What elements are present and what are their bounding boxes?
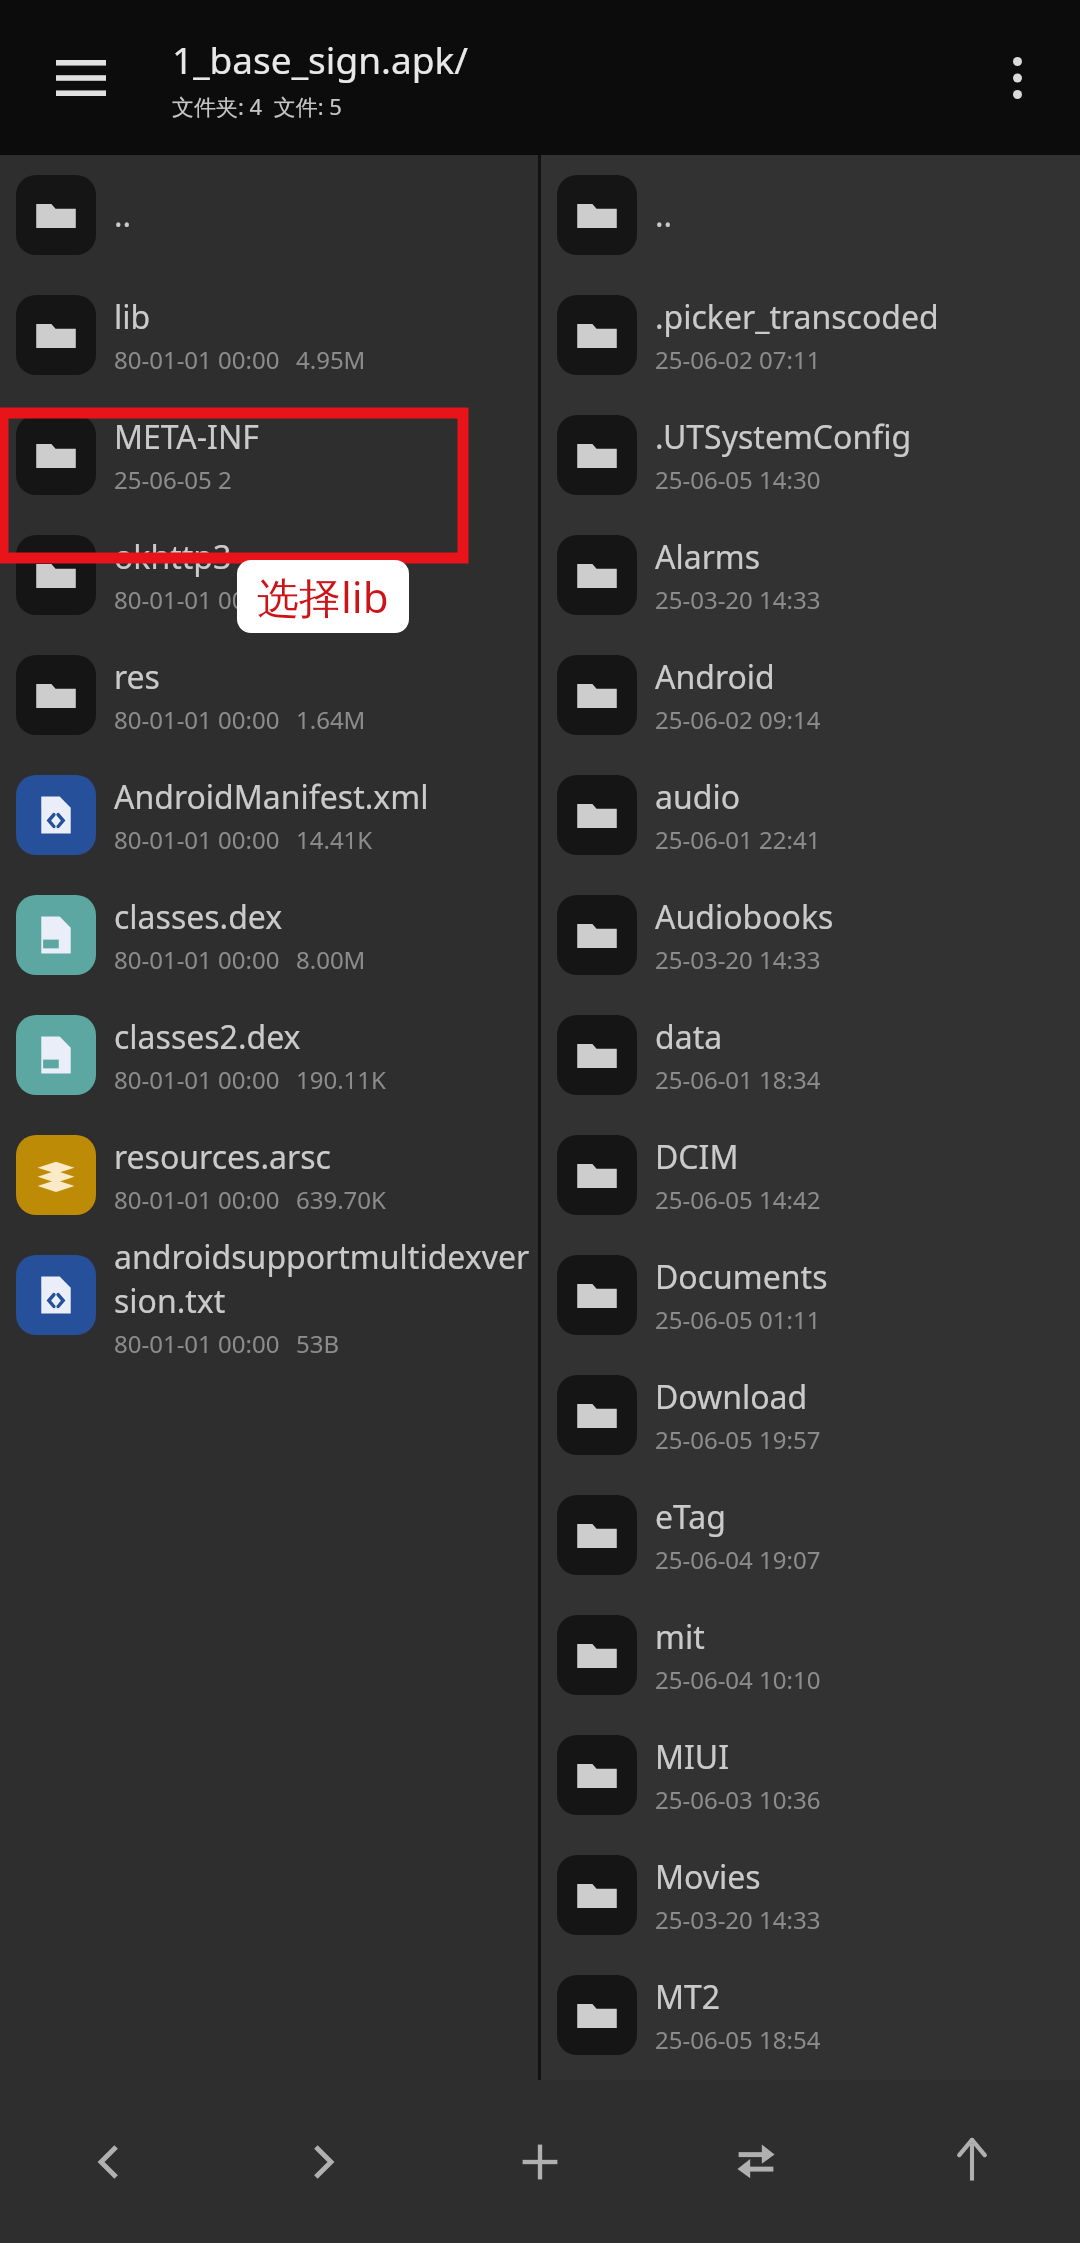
staticText: DCIM	[655, 1135, 739, 1179]
staticText: 25-06-04 19:07	[655, 1543, 821, 1576]
staticText: classes2.dex	[114, 1015, 301, 1059]
staticText: 4.95M	[296, 343, 366, 376]
staticText: 80-01-01 00:00	[114, 1327, 280, 1355]
button[interactable]: Back	[0, 2080, 216, 2243]
staticText: data	[655, 1015, 723, 1059]
staticText: 190.11K	[296, 1063, 386, 1096]
staticText: Alarms	[655, 535, 761, 579]
staticText: audio	[655, 775, 741, 819]
staticText: ..	[655, 193, 673, 237]
button[interactable]: res	[0, 635, 538, 755]
staticText: 8.00M	[296, 943, 366, 976]
staticText: 14.41K	[296, 823, 373, 856]
button[interactable]: lib	[0, 275, 538, 395]
button[interactable]: Transfer	[648, 2080, 864, 2243]
staticText: .picker_transcoded	[655, 295, 939, 339]
button[interactable]: MIUI	[541, 1715, 1080, 1835]
button[interactable]: okhttp3	[0, 515, 538, 635]
staticText: 25-03-20 14:33	[655, 943, 821, 976]
staticText: androidsupportmultidexversion.txt	[114, 1235, 538, 1323]
staticText: res	[114, 655, 160, 699]
button[interactable]: Android	[541, 635, 1080, 755]
staticText: 80-01-01 00:00	[114, 943, 280, 976]
button[interactable]: META-INF	[0, 395, 538, 515]
button[interactable]: Documents	[541, 1235, 1080, 1355]
staticText: 25-06-02 07:11	[655, 343, 821, 376]
staticText: 25-06-05 2	[114, 463, 232, 496]
staticText: Download	[655, 1375, 808, 1419]
button[interactable]: Movies	[541, 1835, 1080, 1955]
button[interactable]: classes.dex	[0, 875, 538, 995]
staticText: 25-06-01 18:34	[655, 1063, 821, 1096]
staticText: MT2	[655, 1975, 721, 2019]
button[interactable]: resources.arsc	[0, 1115, 538, 1235]
staticText: mit	[655, 1615, 705, 1659]
staticText: Android	[655, 655, 775, 699]
staticText: 选择lib	[257, 568, 389, 625]
button[interactable]: Alarms	[541, 515, 1080, 635]
staticText: 80-01-01 00:00	[114, 343, 280, 376]
button[interactable]: Download	[541, 1355, 1080, 1475]
staticText: 25-06-05 14:30	[655, 463, 821, 496]
button[interactable]: classes2.dex	[0, 995, 538, 1115]
staticText: 1.64M	[296, 703, 366, 736]
staticText: lib	[114, 295, 151, 339]
staticText: 25-06-05 18:54	[655, 2023, 821, 2056]
staticText: 80-01-01 00:00	[114, 583, 280, 616]
staticText: 25-06-05 14:42	[655, 1183, 821, 1216]
staticText: ..	[114, 193, 132, 237]
button[interactable]: ..	[0, 155, 538, 275]
staticText: 25-06-01 22:41	[655, 823, 821, 856]
button[interactable]: ..	[541, 155, 1080, 275]
staticText: META-INF	[114, 415, 259, 459]
staticText: 639.70K	[296, 1183, 386, 1216]
button[interactable]: androidsupportmultidexversion.txt	[0, 1235, 538, 1355]
staticText: 25-06-03 10:36	[655, 1783, 821, 1816]
staticText: 33.20K	[296, 583, 373, 616]
staticText: Documents	[655, 1255, 828, 1299]
staticText: AndroidManifest.xml	[114, 775, 429, 819]
staticText: 文件夹: 4 文件: 5	[172, 91, 342, 121]
staticText: 80-01-01 00:00	[114, 703, 280, 736]
staticText: okhttp3	[114, 535, 232, 579]
staticText: 25-06-04 10:10	[655, 1663, 821, 1696]
staticText: 80-01-01 00:00	[114, 823, 280, 856]
staticText: 25-06-05 19:57	[655, 1423, 821, 1456]
button[interactable]: AndroidManifest.xml	[0, 755, 538, 875]
button[interactable]: Forward	[216, 2080, 432, 2243]
button[interactable]: data	[541, 995, 1080, 1115]
staticText: 25-06-05 01:11	[655, 1303, 821, 1336]
staticText: 25-03-20 14:33	[655, 583, 821, 616]
button[interactable]: audio	[541, 755, 1080, 875]
button[interactable]: DCIM	[541, 1115, 1080, 1235]
button[interactable]: eTag	[541, 1475, 1080, 1595]
staticText: resources.arsc	[114, 1135, 331, 1179]
staticText: Movies	[655, 1855, 761, 1899]
staticText: 25-06-02 09:14	[655, 703, 821, 736]
staticText: 25-03-20 14:33	[655, 1903, 821, 1936]
staticText: 53B	[296, 1327, 340, 1355]
button[interactable]: More options	[980, 41, 1054, 115]
button[interactable]: Add	[432, 2080, 648, 2243]
staticText: classes.dex	[114, 895, 283, 939]
button[interactable]: .UTSystemConfig	[541, 395, 1080, 515]
staticText: Audiobooks	[655, 895, 834, 939]
staticText: 80-01-01 00:00	[114, 1063, 280, 1096]
button[interactable]: .picker_transcoded	[541, 275, 1080, 395]
staticText: eTag	[655, 1495, 726, 1539]
staticText: MIUI	[655, 1735, 730, 1779]
button[interactable]: MT2	[541, 1955, 1080, 2075]
staticText: 80-01-01 00:00	[114, 1183, 280, 1216]
staticText: 1_base_sign.apk/	[172, 34, 468, 84]
button[interactable]: Menu	[42, 39, 120, 117]
button[interactable]: mit	[541, 1595, 1080, 1715]
staticText: .UTSystemConfig	[655, 415, 912, 459]
button[interactable]: Up	[864, 2080, 1080, 2243]
button[interactable]: Audiobooks	[541, 875, 1080, 995]
